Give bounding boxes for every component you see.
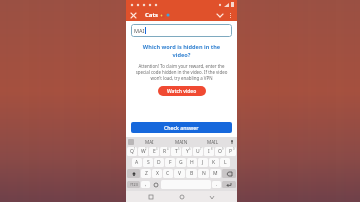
staticText: E <box>153 148 156 155</box>
button[interactable]: Recents <box>146 192 156 202</box>
staticText: 0 <box>233 147 235 151</box>
button[interactable]: G <box>176 158 186 167</box>
staticText: . <box>216 181 218 188</box>
button[interactable]: . <box>212 181 221 188</box>
staticText: 5 <box>178 147 180 151</box>
staticText: 4 <box>167 147 169 151</box>
button[interactable]: Expand <box>215 10 225 20</box>
staticText: Cats <box>145 11 159 19</box>
button[interactable]: I <box>204 147 214 156</box>
button[interactable]: M <box>210 169 221 178</box>
button[interactable]: L <box>220 158 230 167</box>
staticText: N <box>202 170 206 177</box>
button[interactable]: X <box>152 169 162 178</box>
staticText: W <box>141 148 146 155</box>
staticText: MAI <box>145 139 154 145</box>
button[interactable]: MAIN <box>165 137 197 146</box>
button[interactable]: P <box>226 147 236 156</box>
staticText: V <box>178 170 182 177</box>
staticText: L <box>224 159 227 166</box>
staticText: X <box>156 170 159 177</box>
button[interactable]: MAIL <box>197 137 229 146</box>
staticText: , <box>145 181 147 188</box>
staticText: J <box>202 159 204 166</box>
staticText: O <box>218 148 222 155</box>
staticText: 1 <box>134 147 136 151</box>
button[interactable]: Check answer <box>131 122 232 133</box>
staticText: R <box>163 148 167 155</box>
staticText: U <box>196 148 200 155</box>
button[interactable]: Close <box>128 10 138 20</box>
button[interactable]: T <box>171 147 181 156</box>
staticText: K <box>212 159 216 166</box>
button[interactable]: F <box>165 158 175 167</box>
staticText: MAIN <box>175 139 188 145</box>
button[interactable]: Voice input <box>229 139 235 145</box>
staticText: S <box>147 159 150 166</box>
staticText: MAIL <box>207 139 219 145</box>
button[interactable]: Z <box>141 169 151 178</box>
button[interactable]: MAI <box>134 137 165 146</box>
staticText: Q <box>130 148 134 155</box>
staticText: 9 <box>222 147 224 151</box>
button[interactable]: C <box>163 169 173 178</box>
button[interactable]: MAI <box>131 24 232 37</box>
staticText: I <box>208 148 210 155</box>
button[interactable]: Back <box>207 192 217 202</box>
staticText: F <box>169 159 172 166</box>
staticText: T <box>175 148 178 155</box>
button[interactable]: Enter <box>222 181 236 188</box>
staticText: B <box>190 170 194 177</box>
button[interactable]: W <box>138 147 148 156</box>
staticText: P <box>229 148 233 155</box>
button[interactable]: Home <box>177 192 187 202</box>
button[interactable]: A <box>132 158 142 167</box>
button[interactable]: J <box>198 158 208 167</box>
staticText: G <box>179 159 183 166</box>
button[interactable]: S <box>143 158 153 167</box>
button[interactable]: Shift <box>127 169 140 178</box>
staticText: ?123 <box>130 182 138 187</box>
button[interactable]: Y <box>182 147 192 156</box>
button[interactable]: O <box>215 147 225 156</box>
staticText: Y <box>186 148 189 155</box>
button[interactable]: More options <box>225 10 235 20</box>
staticText: 8 <box>211 147 213 151</box>
button[interactable]: Symbols <box>127 181 140 188</box>
button[interactable]: V <box>174 169 185 178</box>
button[interactable]: N <box>198 169 209 178</box>
staticText: Check answer <box>164 124 199 131</box>
staticText: MAI <box>134 27 145 34</box>
staticText: Z <box>145 170 148 177</box>
button[interactable]: Watch video <box>158 86 206 96</box>
button[interactable]: Q <box>127 147 137 156</box>
button[interactable]: E <box>149 147 159 156</box>
button[interactable]: Emoji <box>151 181 160 188</box>
staticText: 7 <box>200 147 202 151</box>
staticText: Watch video <box>167 88 197 95</box>
staticText: A <box>135 159 139 166</box>
staticText: 3 <box>156 147 158 151</box>
staticText: D <box>157 159 161 166</box>
staticText: M <box>213 170 218 177</box>
button[interactable]: Keyboard settings <box>128 139 134 145</box>
button[interactable]: , <box>141 181 150 188</box>
button[interactable]: B <box>186 169 197 178</box>
staticText: C <box>166 170 170 177</box>
button[interactable]: U <box>193 147 203 156</box>
staticText: Which word is hidden in the video? <box>134 43 229 59</box>
staticText: 2 <box>145 147 147 151</box>
staticText: 6 <box>189 147 191 151</box>
button[interactable]: D <box>154 158 164 167</box>
button[interactable]: K <box>209 158 219 167</box>
button[interactable]: H <box>187 158 197 167</box>
staticText: H <box>190 159 194 166</box>
button[interactable]: R <box>160 147 170 156</box>
staticText: Attention! To claim your reward, enter t… <box>135 63 228 81</box>
button[interactable]: Backspace <box>222 169 236 178</box>
